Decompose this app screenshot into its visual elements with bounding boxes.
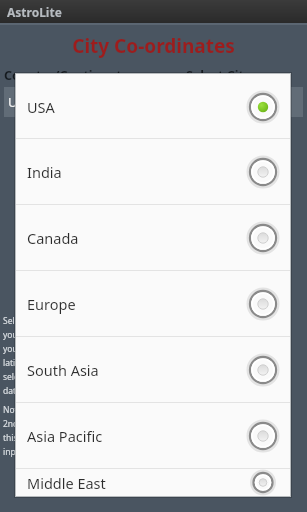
staticText: database. xyxy=(3,385,42,397)
button[interactable]: Canada xyxy=(16,205,290,270)
staticText: Canada xyxy=(27,228,246,248)
staticText: USA xyxy=(27,97,246,117)
staticText: AstroLite xyxy=(7,4,62,20)
staticText: USA xyxy=(8,93,33,111)
button[interactable]: Middle East xyxy=(16,469,290,496)
staticText: latitude/longitude values will be xyxy=(3,357,131,369)
staticText: South Asia xyxy=(27,360,246,380)
staticText: Note: The time zone is derived from the xyxy=(3,404,161,416)
staticText: this by entering the values in the xyxy=(3,432,134,444)
staticText: your city from the list. If you cannot f… xyxy=(3,329,163,341)
staticText: Select City xyxy=(186,67,251,84)
button[interactable]: Asia Pacific xyxy=(16,403,290,468)
staticText: Europe xyxy=(27,294,246,314)
staticText: City Co-ordinates xyxy=(0,33,307,59)
staticText: input boxes. xyxy=(3,446,52,458)
button[interactable]: South Asia xyxy=(16,337,290,402)
staticText: Select the country/continent and then xyxy=(3,315,155,327)
staticText: Asia Pacific xyxy=(27,426,246,446)
staticText: your city, pick the nearest one. The xyxy=(3,343,142,355)
staticText: Country/Continent xyxy=(4,67,122,84)
button[interactable]: India xyxy=(16,139,290,204)
button[interactable] xyxy=(171,87,303,117)
button[interactable]: USA xyxy=(16,75,290,138)
staticText: Middle East xyxy=(27,473,246,493)
staticText: selected automatically from internal xyxy=(3,371,147,383)
staticText: 2nd field. You may override any of xyxy=(3,418,139,430)
staticText: India xyxy=(27,162,246,182)
button[interactable]: USA xyxy=(4,87,136,117)
button[interactable]: Europe xyxy=(16,271,290,336)
